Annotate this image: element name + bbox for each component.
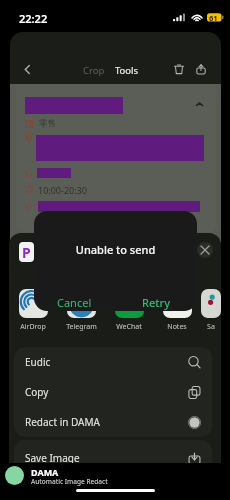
staticText: 10:00-20:30: [38, 184, 87, 196]
staticText: Crop: [83, 64, 105, 77]
staticText: Sa: [207, 322, 215, 332]
staticText: AirDrop: [20, 322, 46, 332]
staticText: P: [22, 243, 31, 262]
staticText: Redact in DAMA: [25, 415, 100, 429]
button[interactable]: Notes: [153, 289, 201, 332]
button[interactable]: Back: [16, 58, 38, 80]
button[interactable]: Close: [197, 242, 213, 258]
staticText: Notes: [167, 322, 187, 332]
staticText: Tools: [115, 64, 139, 77]
button[interactable]: WeChat: [105, 289, 153, 332]
button[interactable]: Share: [190, 58, 212, 80]
staticText: Copy: [25, 385, 49, 399]
button[interactable]: Redact in DAMA: [14, 407, 212, 437]
staticText: Retry: [142, 295, 170, 310]
staticText: 61: [209, 13, 218, 23]
staticText: Telegram: [66, 322, 97, 332]
button[interactable]: Sa: [201, 289, 221, 332]
button[interactable]: Retry: [115, 290, 197, 311]
staticText: Save Image: [25, 451, 80, 465]
staticText: Automatic Image Redact: [31, 477, 108, 486]
button[interactable]: Delete: [168, 58, 190, 80]
button[interactable]: Tools: [112, 62, 142, 79]
staticText: Cancel: [57, 295, 92, 310]
staticText: 零售: [39, 118, 56, 129]
button[interactable]: Crop: [80, 62, 108, 79]
staticText: DAMA: [31, 466, 59, 478]
button[interactable]: Cancel: [34, 290, 115, 311]
button[interactable]: Copy: [14, 377, 212, 407]
button[interactable]: Save Image: [14, 440, 212, 475]
staticText: Eudic: [25, 355, 51, 369]
button[interactable]: Eudic: [14, 347, 212, 377]
staticText: Unable to send: [34, 242, 197, 257]
button[interactable]: AirDrop: [9, 289, 57, 332]
staticText: WeChat: [116, 322, 142, 332]
staticText: 22:22: [19, 11, 48, 26]
button[interactable]: Telegram: [57, 289, 105, 332]
